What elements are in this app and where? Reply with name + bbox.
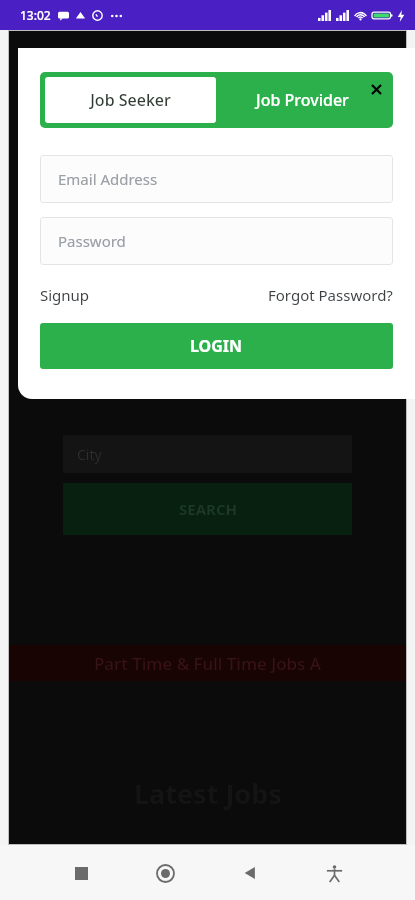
staticText: Job Seeker	[90, 89, 171, 111]
staticText: Forgot Password?	[268, 285, 393, 305]
button[interactable]: Accessibility	[312, 851, 356, 895]
staticText: Signup	[40, 285, 90, 305]
button[interactable]: Email Address	[40, 155, 393, 203]
button[interactable]: Job Seeker	[45, 77, 216, 123]
button[interactable]: Job Provider	[216, 77, 388, 123]
staticText: SEARCH	[179, 499, 237, 519]
staticText: LOGIN	[190, 335, 243, 357]
staticText: Email Address	[58, 169, 158, 189]
button[interactable]: Back	[228, 851, 272, 895]
button[interactable]: Recents	[59, 851, 103, 895]
staticText: City	[77, 445, 102, 464]
button[interactable]: LOGIN	[40, 323, 393, 369]
staticText: Latest Jobs	[134, 775, 282, 812]
button[interactable]: Forgot Password?	[268, 285, 393, 305]
staticText: 13:02	[20, 7, 51, 23]
button[interactable]: Close	[365, 78, 387, 100]
staticText: Password	[58, 231, 126, 251]
button[interactable]: Home	[143, 851, 187, 895]
button[interactable]: Password	[40, 217, 393, 265]
staticText: Part Time & Full Time Jobs A	[94, 652, 321, 675]
staticText: Job Provider	[256, 89, 349, 111]
button[interactable]: Signup	[40, 285, 90, 305]
